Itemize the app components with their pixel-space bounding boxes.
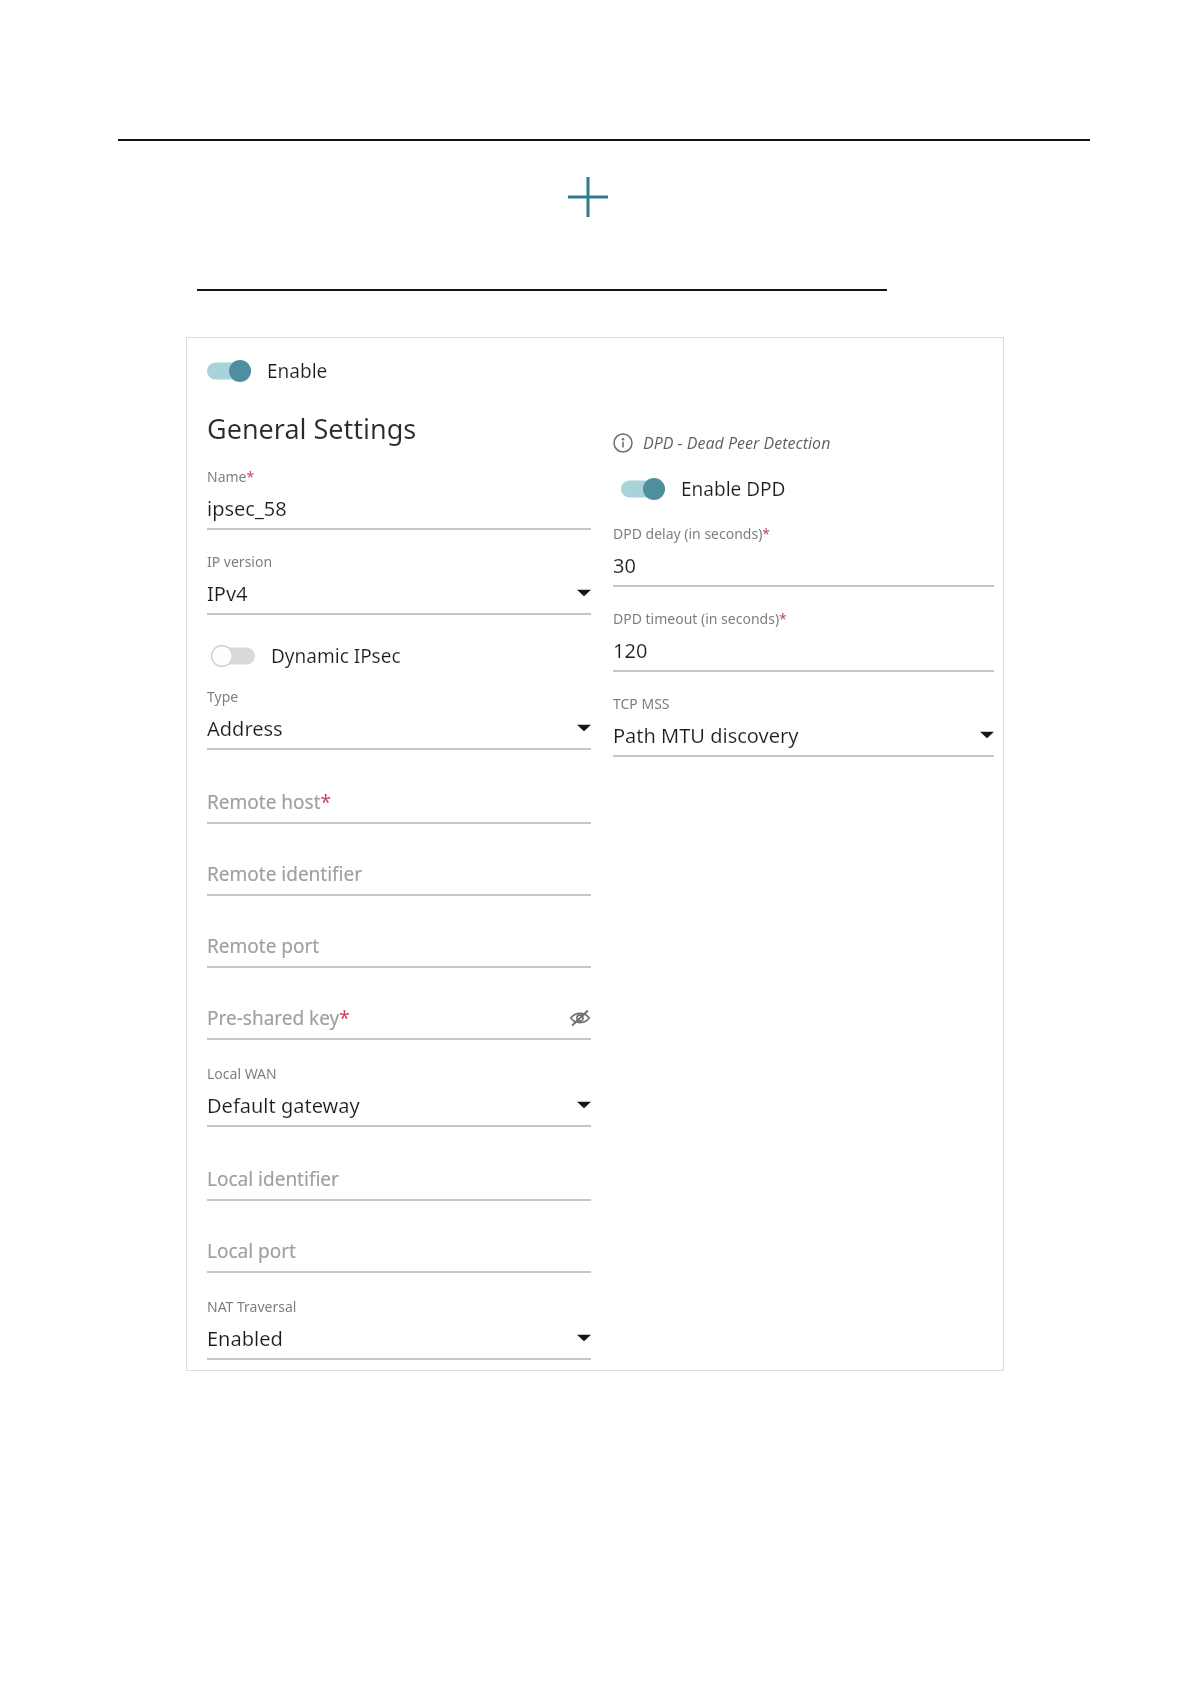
button[interactable]: Local identifier	[207, 1165, 591, 1201]
staticText: DPD - Dead Peer Detection	[643, 432, 831, 454]
staticText: 30	[613, 552, 636, 579]
staticText: Remote identifier	[207, 861, 363, 887]
staticText: General Settings	[207, 410, 417, 447]
staticText: DPD delay (in seconds)*	[613, 524, 771, 543]
staticText: Enabled	[207, 1325, 283, 1352]
staticText: IPv4	[207, 580, 248, 607]
staticText: DPD timeout (in seconds)*	[613, 609, 787, 628]
staticText: Type	[207, 687, 239, 706]
staticText: Address	[207, 715, 283, 742]
button[interactable]: Add	[556, 165, 620, 229]
button[interactable]: Remote port	[207, 932, 591, 968]
staticText: Name*	[207, 467, 255, 486]
button[interactable]: Remote host*	[207, 788, 591, 824]
staticText: Enable	[267, 358, 328, 384]
staticText: Local port	[207, 1238, 296, 1264]
staticText: Dynamic IPsec	[271, 643, 401, 669]
button[interactable]: Dynamic IPsec	[211, 639, 401, 673]
staticText: Remote host*	[207, 789, 331, 815]
staticText: Local WAN	[207, 1064, 277, 1083]
button[interactable]: DPD timeout (in seconds)*	[613, 609, 994, 672]
button[interactable]: Remote identifier	[207, 860, 591, 896]
staticText: IP version	[207, 552, 273, 571]
button[interactable]: TCP MSS	[613, 694, 994, 757]
button[interactable]: Local WAN	[207, 1064, 591, 1127]
staticText: Default gateway	[207, 1092, 360, 1119]
button[interactable]: IP version	[207, 552, 591, 615]
button[interactable]: Enable	[207, 354, 328, 388]
button[interactable]: Pre-shared key*	[207, 1004, 591, 1040]
staticText: Local identifier	[207, 1166, 339, 1192]
staticText: TCP MSS	[613, 694, 670, 713]
staticText: Remote port	[207, 933, 320, 959]
staticText: Pre-shared key*	[207, 1005, 350, 1031]
staticText: Path MTU discovery	[613, 722, 799, 749]
button[interactable]: Enable DPD	[621, 472, 786, 506]
button[interactable]: DPD delay (in seconds)*	[613, 524, 994, 587]
staticText: Enable DPD	[681, 476, 786, 502]
staticText: 120	[613, 637, 648, 664]
button[interactable]: Name*	[207, 467, 591, 530]
button[interactable]: NAT Traversal	[207, 1297, 591, 1360]
button[interactable]: Local port	[207, 1237, 591, 1273]
staticText: NAT Traversal	[207, 1297, 297, 1316]
staticText: ipsec_58	[207, 495, 287, 522]
other: Show password	[569, 1007, 591, 1029]
button[interactable]: Type	[207, 687, 591, 750]
